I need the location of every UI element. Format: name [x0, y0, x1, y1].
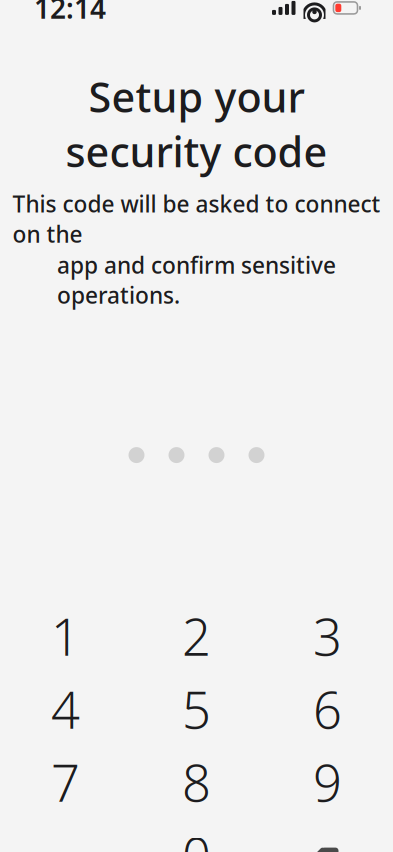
- staticText: security code: [65, 124, 327, 179]
- button[interactable]: 5: [141, 673, 251, 745]
- staticText: app and confirm sensitive operations.: [57, 250, 336, 310]
- staticText: 9: [313, 748, 342, 816]
- staticText: 4: [51, 675, 80, 743]
- staticText: 2: [182, 602, 211, 670]
- staticText: 7: [51, 748, 80, 816]
- button[interactable]: 9: [272, 746, 382, 818]
- staticText: 8: [182, 748, 211, 816]
- button[interactable]: 7: [10, 746, 120, 818]
- button[interactable]: 8: [141, 746, 251, 818]
- staticText: Setup your: [88, 69, 304, 124]
- button[interactable]: 2: [141, 600, 251, 672]
- button[interactable]: 1: [10, 600, 120, 672]
- button[interactable]: 6: [272, 673, 382, 745]
- staticText: 12:14: [34, 0, 106, 27]
- button[interactable]: 0: [141, 819, 251, 852]
- staticText: 6: [313, 675, 342, 743]
- staticText: 5: [182, 675, 211, 743]
- button[interactable]: Delete: [272, 819, 382, 852]
- staticText: 3: [313, 602, 342, 670]
- button[interactable]: 3: [272, 600, 382, 672]
- staticText: This code will be asked to connect on th…: [12, 189, 380, 249]
- button[interactable]: 4: [10, 673, 120, 745]
- staticText: 1: [51, 602, 80, 670]
- staticText: 0: [182, 821, 211, 852]
